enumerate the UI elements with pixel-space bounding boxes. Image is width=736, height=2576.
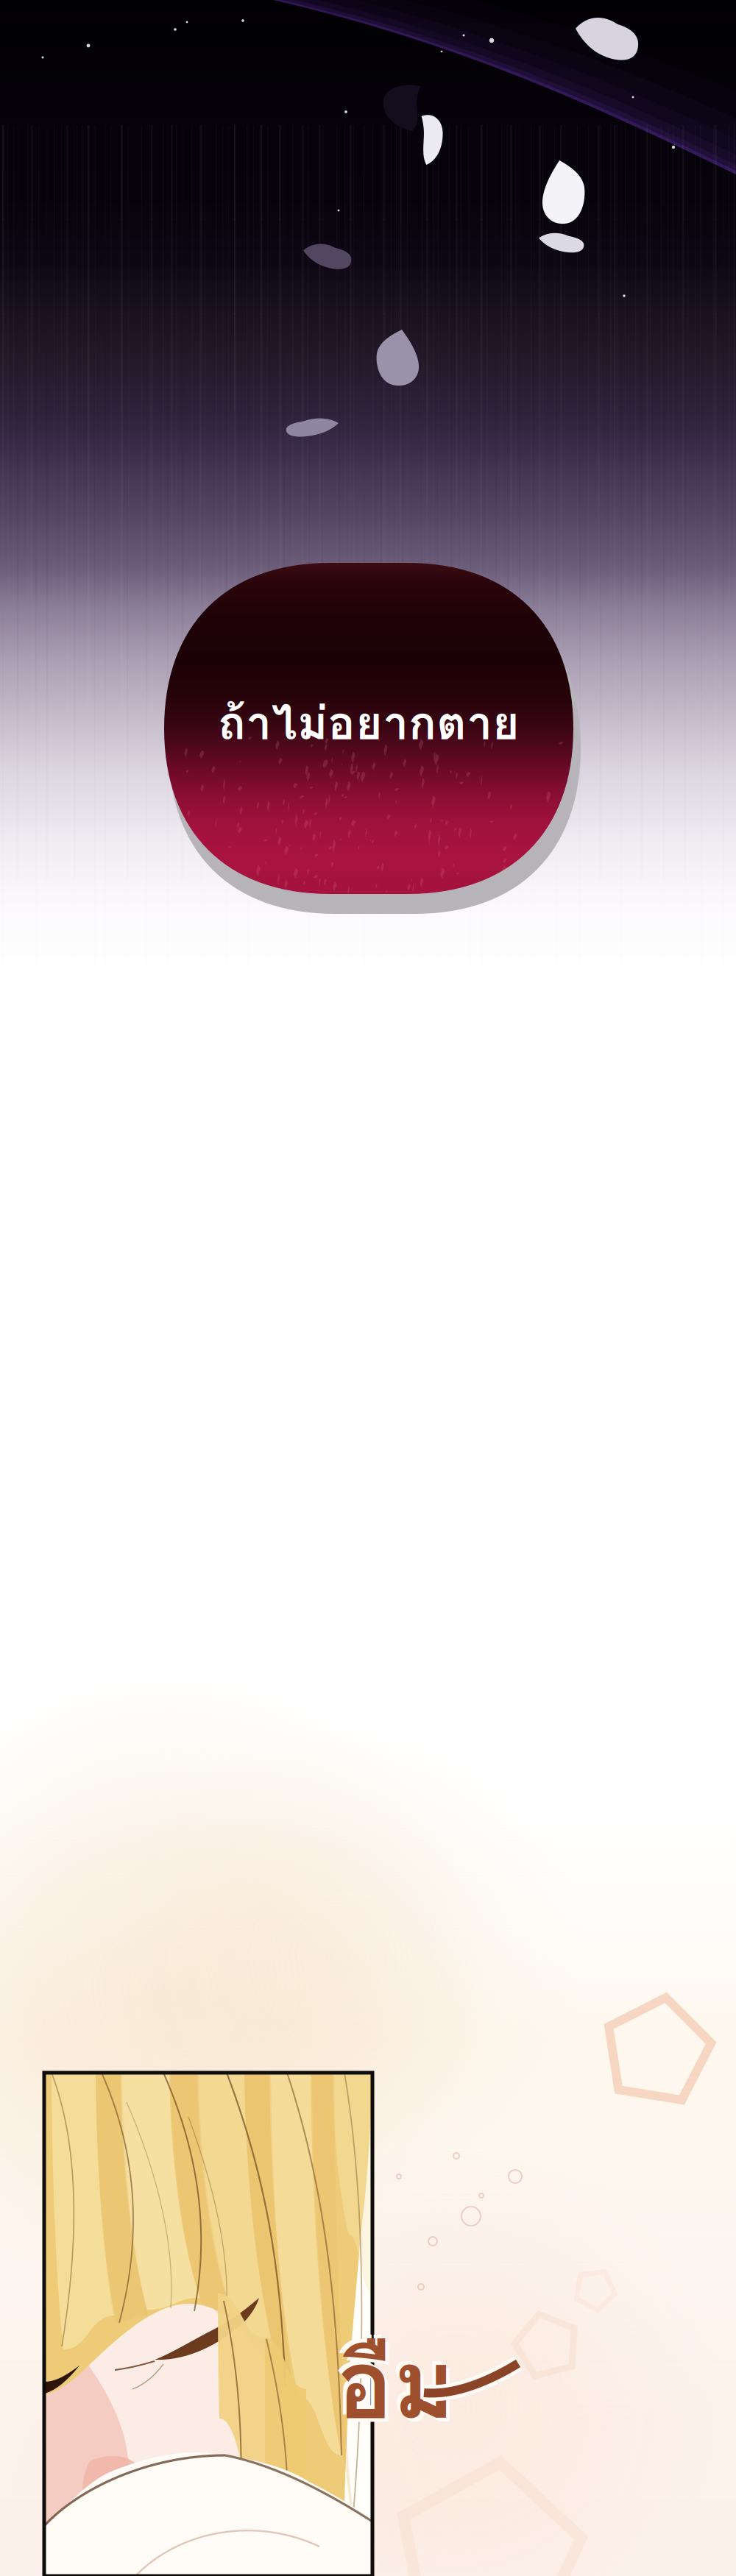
staticText: อืม <box>333 2307 451 2453</box>
staticText: ถ้าไม่อยากตาย <box>218 687 520 759</box>
staticText: อืม <box>340 2315 459 2461</box>
staticText: อืม <box>336 2311 455 2457</box>
